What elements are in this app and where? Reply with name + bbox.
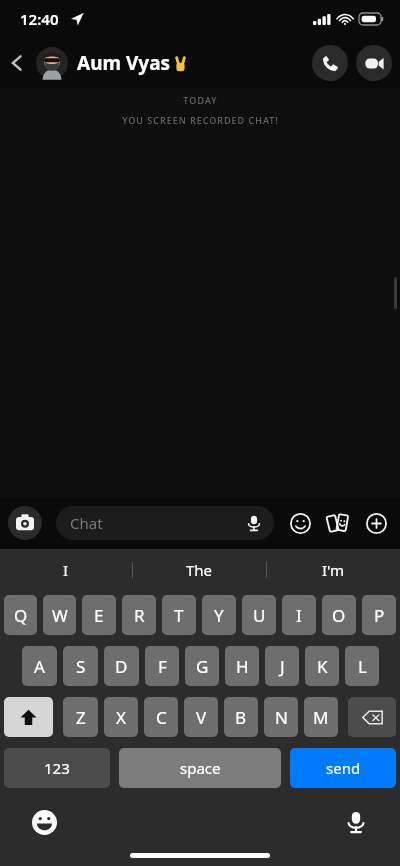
button[interactable]: The bbox=[133, 549, 266, 591]
staticText: F bbox=[158, 655, 167, 678]
staticText: R bbox=[134, 604, 145, 627]
staticText: I bbox=[296, 604, 302, 627]
button[interactable]: U bbox=[242, 595, 276, 635]
staticText: C bbox=[156, 706, 167, 729]
staticText: X bbox=[116, 706, 126, 729]
button[interactable]: Camera bbox=[8, 506, 42, 540]
button[interactable]: 123 bbox=[4, 748, 110, 788]
staticText: Y bbox=[214, 604, 224, 627]
staticText: Q bbox=[14, 604, 28, 627]
button[interactable]: Chat bbox=[56, 506, 274, 540]
staticText: J bbox=[280, 655, 285, 678]
button[interactable]: P bbox=[362, 595, 396, 635]
staticText: YOU SCREEN RECORDED CHAT! bbox=[122, 114, 279, 126]
button[interactable]: Voice call bbox=[312, 45, 348, 81]
button[interactable]: C bbox=[144, 697, 178, 737]
staticText: space bbox=[180, 758, 221, 778]
button[interactable]: X bbox=[104, 697, 138, 737]
button[interactable]: Z bbox=[63, 697, 98, 737]
button[interactable]: J bbox=[265, 646, 299, 686]
staticText: H bbox=[236, 655, 249, 678]
button[interactable]: space bbox=[119, 748, 281, 788]
button[interactable]: Stickers bbox=[286, 509, 314, 537]
button[interactable]: Profile bbox=[36, 47, 68, 79]
button[interactable]: O bbox=[322, 595, 356, 635]
button[interactable]: I bbox=[0, 549, 132, 591]
button[interactable]: Dictation bbox=[342, 808, 370, 836]
button[interactable]: Q bbox=[4, 595, 37, 635]
button[interactable]: F bbox=[145, 646, 179, 686]
button[interactable]: B bbox=[224, 697, 258, 737]
button[interactable]: Emoji keyboard bbox=[30, 808, 58, 836]
staticText: D bbox=[115, 655, 128, 678]
staticText: The bbox=[186, 560, 213, 580]
staticText: P bbox=[374, 604, 385, 627]
button[interactable]: More bbox=[362, 509, 390, 537]
staticText: G bbox=[196, 655, 209, 678]
button[interactable]: send bbox=[290, 748, 396, 788]
button[interactable]: H bbox=[225, 646, 259, 686]
staticText: send bbox=[326, 758, 361, 778]
staticText: E bbox=[94, 604, 104, 627]
button[interactable]: Aum Vyas bbox=[77, 50, 189, 76]
staticText: K bbox=[317, 655, 328, 678]
button[interactable]: V bbox=[184, 697, 218, 737]
button[interactable]: A bbox=[22, 646, 57, 686]
button[interactable]: M bbox=[304, 697, 338, 737]
button[interactable]: G bbox=[185, 646, 219, 686]
staticText: L bbox=[358, 655, 367, 678]
button[interactable]: D bbox=[104, 646, 139, 686]
staticText: U bbox=[253, 604, 266, 627]
button[interactable]: L bbox=[345, 646, 379, 686]
staticText: T bbox=[174, 604, 184, 627]
staticText: I bbox=[63, 560, 69, 580]
staticText: 12:40 bbox=[20, 9, 59, 29]
staticText: B bbox=[235, 706, 247, 729]
button[interactable]: W bbox=[43, 595, 76, 635]
button[interactable]: R bbox=[122, 595, 156, 635]
button[interactable]: Cameos bbox=[324, 509, 352, 537]
staticText: O bbox=[332, 604, 346, 627]
button[interactable]: I bbox=[282, 595, 316, 635]
staticText: TODAY bbox=[183, 94, 218, 106]
button[interactable]: Video call bbox=[356, 45, 392, 81]
staticText: Z bbox=[76, 706, 86, 729]
staticText: Aum Vyas bbox=[77, 50, 171, 76]
staticText: 123 bbox=[44, 758, 70, 778]
button[interactable]: K bbox=[305, 646, 339, 686]
staticText: N bbox=[275, 706, 288, 729]
button[interactable]: E bbox=[82, 595, 116, 635]
button[interactable]: S bbox=[63, 646, 98, 686]
staticText: W bbox=[52, 604, 68, 627]
staticText: S bbox=[76, 655, 86, 678]
button[interactable]: Y bbox=[202, 595, 236, 635]
staticText: Chat bbox=[70, 513, 103, 533]
staticText: V bbox=[196, 706, 207, 729]
staticText: A bbox=[34, 655, 45, 678]
button[interactable]: Shift bbox=[4, 697, 53, 737]
staticText: M bbox=[313, 706, 329, 729]
staticText: I'm bbox=[322, 560, 345, 580]
button[interactable]: N bbox=[264, 697, 298, 737]
button[interactable]: Backspace bbox=[348, 697, 396, 737]
button[interactable]: I'm bbox=[267, 549, 400, 591]
button[interactable]: Voice message bbox=[244, 513, 264, 533]
button[interactable]: Back bbox=[0, 46, 34, 80]
button[interactable]: T bbox=[162, 595, 196, 635]
